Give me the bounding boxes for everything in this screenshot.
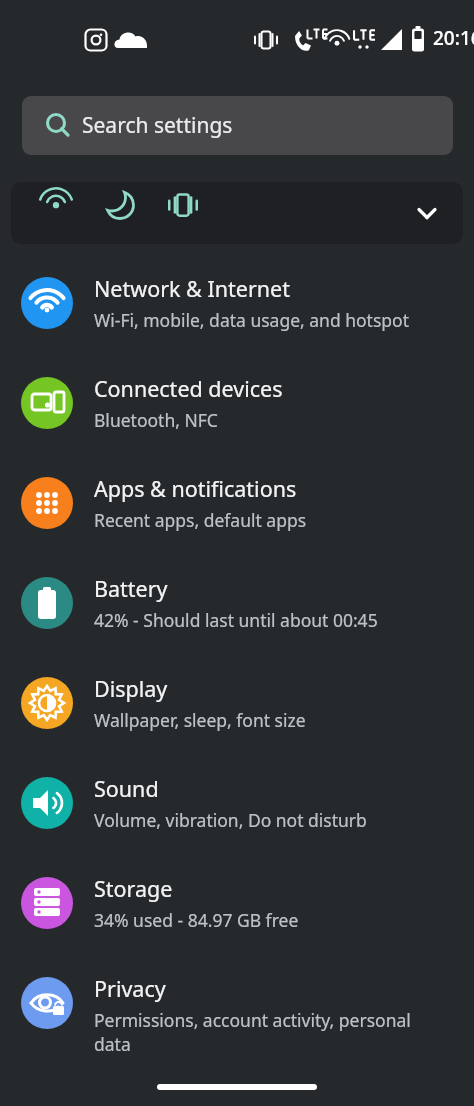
button[interactable]: Apps & notifications: [0, 456, 474, 556]
staticText: Permissions, account activity, personal …: [94, 1008, 448, 1056]
staticText: Network & Internet: [94, 274, 290, 303]
button[interactable]: Network & Internet: [0, 256, 474, 356]
staticText: 34% used - 84.97 GB free: [94, 908, 299, 932]
button[interactable]: Storage: [0, 856, 474, 956]
button[interactable]: Display: [0, 656, 474, 756]
staticText: Storage: [94, 874, 173, 903]
staticText: Connected devices: [94, 374, 283, 403]
staticText: Apps & notifications: [94, 474, 297, 503]
staticText: 20:16: [433, 25, 474, 51]
staticText: Recent apps, default apps: [94, 508, 307, 532]
staticText: Search settings: [82, 111, 233, 140]
button[interactable]: Expand: [407, 193, 447, 233]
staticText: Sound: [94, 774, 159, 803]
staticText: Battery: [94, 574, 168, 603]
button[interactable]: Do not disturb: [98, 182, 144, 228]
staticText: Display: [94, 674, 168, 703]
button[interactable]: Privacy: [0, 956, 474, 1074]
staticText: Wallpaper, sleep, font size: [94, 708, 306, 732]
staticText: 42% - Should last until about 00:45: [94, 608, 378, 632]
staticText: Volume, vibration, Do not disturb: [94, 808, 367, 832]
staticText: Wi-Fi, mobile, data usage, and hotspot: [94, 308, 409, 332]
button[interactable]: Hotspot: [33, 182, 79, 228]
button[interactable]: Sound: [0, 756, 474, 856]
button[interactable]: Connected devices: [0, 356, 474, 456]
button[interactable]: Battery: [0, 556, 474, 656]
staticText: Privacy: [94, 974, 166, 1003]
staticText: Bluetooth, NFC: [94, 408, 218, 432]
button[interactable]: Search settings: [22, 96, 453, 155]
button[interactable]: Vibrate: [160, 182, 206, 228]
